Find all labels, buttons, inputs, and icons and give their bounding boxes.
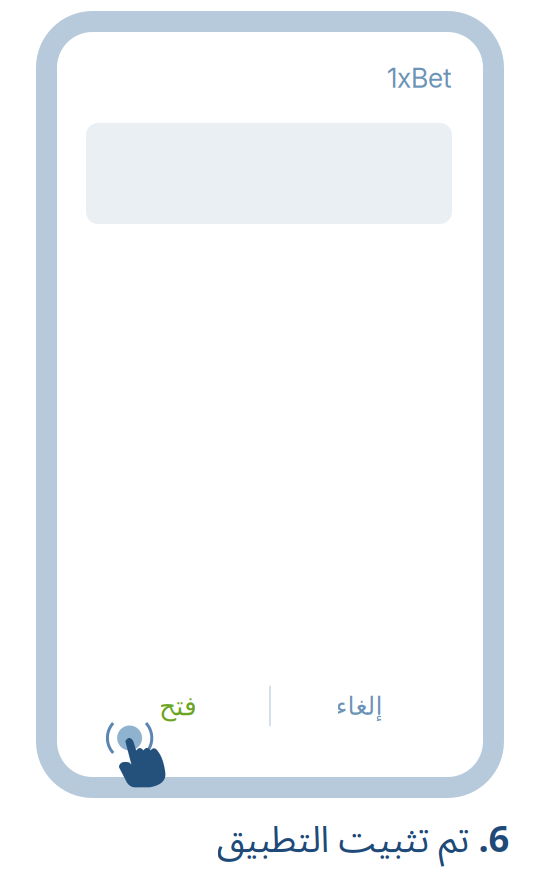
- button[interactable]: فتح: [57, 674, 270, 738]
- staticText: ‫6. تم تثبيت التطبيق: [216, 803, 509, 872]
- staticText: إلغاء: [335, 691, 382, 721]
- staticText: 1xBet: [387, 62, 452, 94]
- button[interactable]: إلغاء: [270, 674, 483, 738]
- staticText: فتح: [158, 690, 196, 721]
